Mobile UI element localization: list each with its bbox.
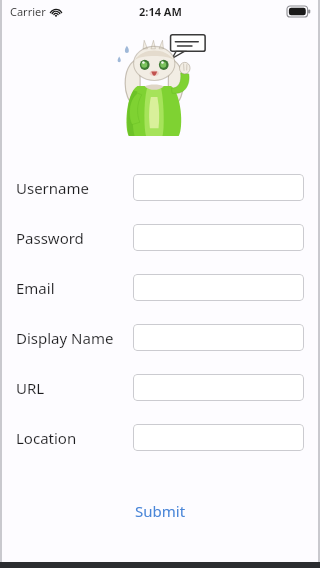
button[interactable]: Display Name <box>133 324 304 351</box>
button[interactable]: Password <box>133 224 304 251</box>
button[interactable]: Location <box>133 424 304 451</box>
staticText: Location <box>16 428 77 448</box>
staticText: Username <box>16 178 89 198</box>
button[interactable]: URL <box>133 374 304 401</box>
staticText: Email <box>16 278 55 298</box>
button[interactable]: Username <box>133 174 304 201</box>
button[interactable]: Submit <box>121 495 200 527</box>
staticText: Password <box>16 228 84 248</box>
staticText: URL <box>16 378 45 398</box>
staticText: Display Name <box>16 328 114 348</box>
staticText: Carrier <box>10 4 46 19</box>
button[interactable]: Email <box>133 274 304 301</box>
staticText: 2:14 AM <box>139 4 182 19</box>
staticText: Submit <box>135 501 186 521</box>
